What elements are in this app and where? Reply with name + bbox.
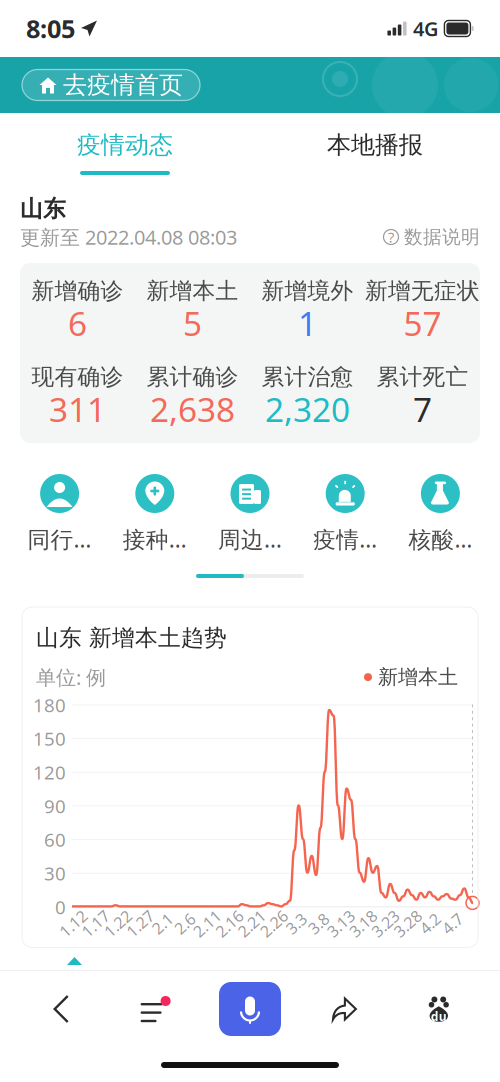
staticText: 累计死亡 bbox=[376, 363, 468, 391]
button[interactable]: 去疫情首页 bbox=[22, 69, 200, 100]
staticText: 180 bbox=[33, 692, 66, 717]
staticText: 8:05 bbox=[26, 12, 75, 45]
staticText: 山东 新增本土趋势 bbox=[36, 624, 227, 652]
staticText: 57 bbox=[403, 301, 441, 345]
button[interactable]: Menu bbox=[108, 996, 203, 1022]
staticText: 更新至 2022.04.08 08:03 bbox=[20, 224, 237, 250]
staticText: 累计确诊 bbox=[146, 363, 238, 391]
staticText: 3.23 bbox=[370, 913, 401, 934]
button[interactable]: 核酸… bbox=[393, 474, 488, 552]
staticText: 2.11 bbox=[191, 913, 222, 934]
staticText: 新增境外 bbox=[261, 277, 353, 305]
button[interactable]: 接种… bbox=[107, 474, 202, 552]
button[interactable]: 疫情动态 bbox=[0, 131, 250, 175]
staticText: 3.8 bbox=[307, 913, 329, 934]
button[interactable]: 周边… bbox=[202, 474, 298, 552]
staticText: 7 bbox=[413, 387, 432, 431]
staticText: 4.2 bbox=[419, 913, 441, 934]
button[interactable]: Baidu bbox=[392, 995, 486, 1022]
staticText: 1.22 bbox=[102, 913, 133, 934]
staticText: 2.26 bbox=[258, 913, 289, 934]
staticText: 90 bbox=[44, 793, 66, 818]
staticText: 4G bbox=[413, 15, 439, 42]
staticText: 3.28 bbox=[392, 913, 423, 934]
button[interactable]: Share bbox=[297, 997, 392, 1021]
staticText: 2.6 bbox=[174, 913, 196, 934]
staticText: 周边… bbox=[218, 524, 282, 554]
staticText: 3.18 bbox=[348, 913, 379, 934]
staticText: 2.1 bbox=[151, 913, 173, 934]
staticText: 单位: 例 bbox=[36, 664, 106, 690]
button[interactable]: ? bbox=[383, 225, 480, 248]
staticText: 150 bbox=[33, 726, 66, 751]
staticText: ? bbox=[388, 227, 394, 247]
staticText: 5 bbox=[183, 301, 202, 345]
staticText: 1.27 bbox=[125, 913, 156, 934]
staticText: 30 bbox=[44, 861, 66, 886]
staticText: 去疫情首页 bbox=[63, 70, 183, 100]
staticText: 新增本土 bbox=[146, 277, 238, 305]
staticText: 120 bbox=[33, 760, 66, 785]
staticText: 1.12 bbox=[58, 913, 89, 934]
staticText: 3.13 bbox=[325, 913, 356, 934]
staticText: 接种… bbox=[123, 524, 187, 554]
staticText: 3.3 bbox=[285, 913, 307, 934]
staticText: du bbox=[431, 1008, 447, 1024]
staticText: 1 bbox=[298, 301, 317, 345]
staticText: 0 bbox=[55, 894, 66, 919]
staticText: 2.16 bbox=[214, 913, 245, 934]
staticText: 现有确诊 bbox=[31, 363, 123, 391]
staticText: 新增本土 bbox=[378, 665, 458, 689]
staticText: 60 bbox=[44, 827, 66, 852]
staticText: 疫情动态 bbox=[77, 130, 173, 160]
staticText: 1.17 bbox=[80, 913, 111, 934]
staticText: 山东 bbox=[20, 195, 66, 223]
staticText: 数据说明 bbox=[404, 225, 480, 248]
staticText: 累计治愈 bbox=[261, 363, 353, 391]
button[interactable]: 疫情… bbox=[298, 474, 393, 552]
staticText: 同行… bbox=[28, 524, 92, 554]
staticText: 2,638 bbox=[150, 387, 235, 431]
staticText: 2,320 bbox=[265, 387, 350, 431]
staticText: 新增无症状 bbox=[365, 277, 480, 305]
staticText: 6 bbox=[68, 301, 87, 345]
button[interactable]: Back bbox=[14, 995, 108, 1023]
staticText: 2.21 bbox=[236, 913, 267, 934]
button[interactable]: 本地播报 bbox=[250, 131, 500, 175]
staticText: 核酸… bbox=[408, 524, 472, 554]
staticText: 本地播报 bbox=[327, 130, 423, 160]
staticText: 新增确诊 bbox=[31, 277, 123, 305]
staticText: 疫情… bbox=[313, 524, 377, 554]
button[interactable]: 同行… bbox=[12, 474, 107, 552]
staticText: 4.7 bbox=[441, 913, 463, 934]
button[interactable]: Voice search bbox=[203, 982, 297, 1036]
staticText: 311 bbox=[49, 387, 106, 431]
